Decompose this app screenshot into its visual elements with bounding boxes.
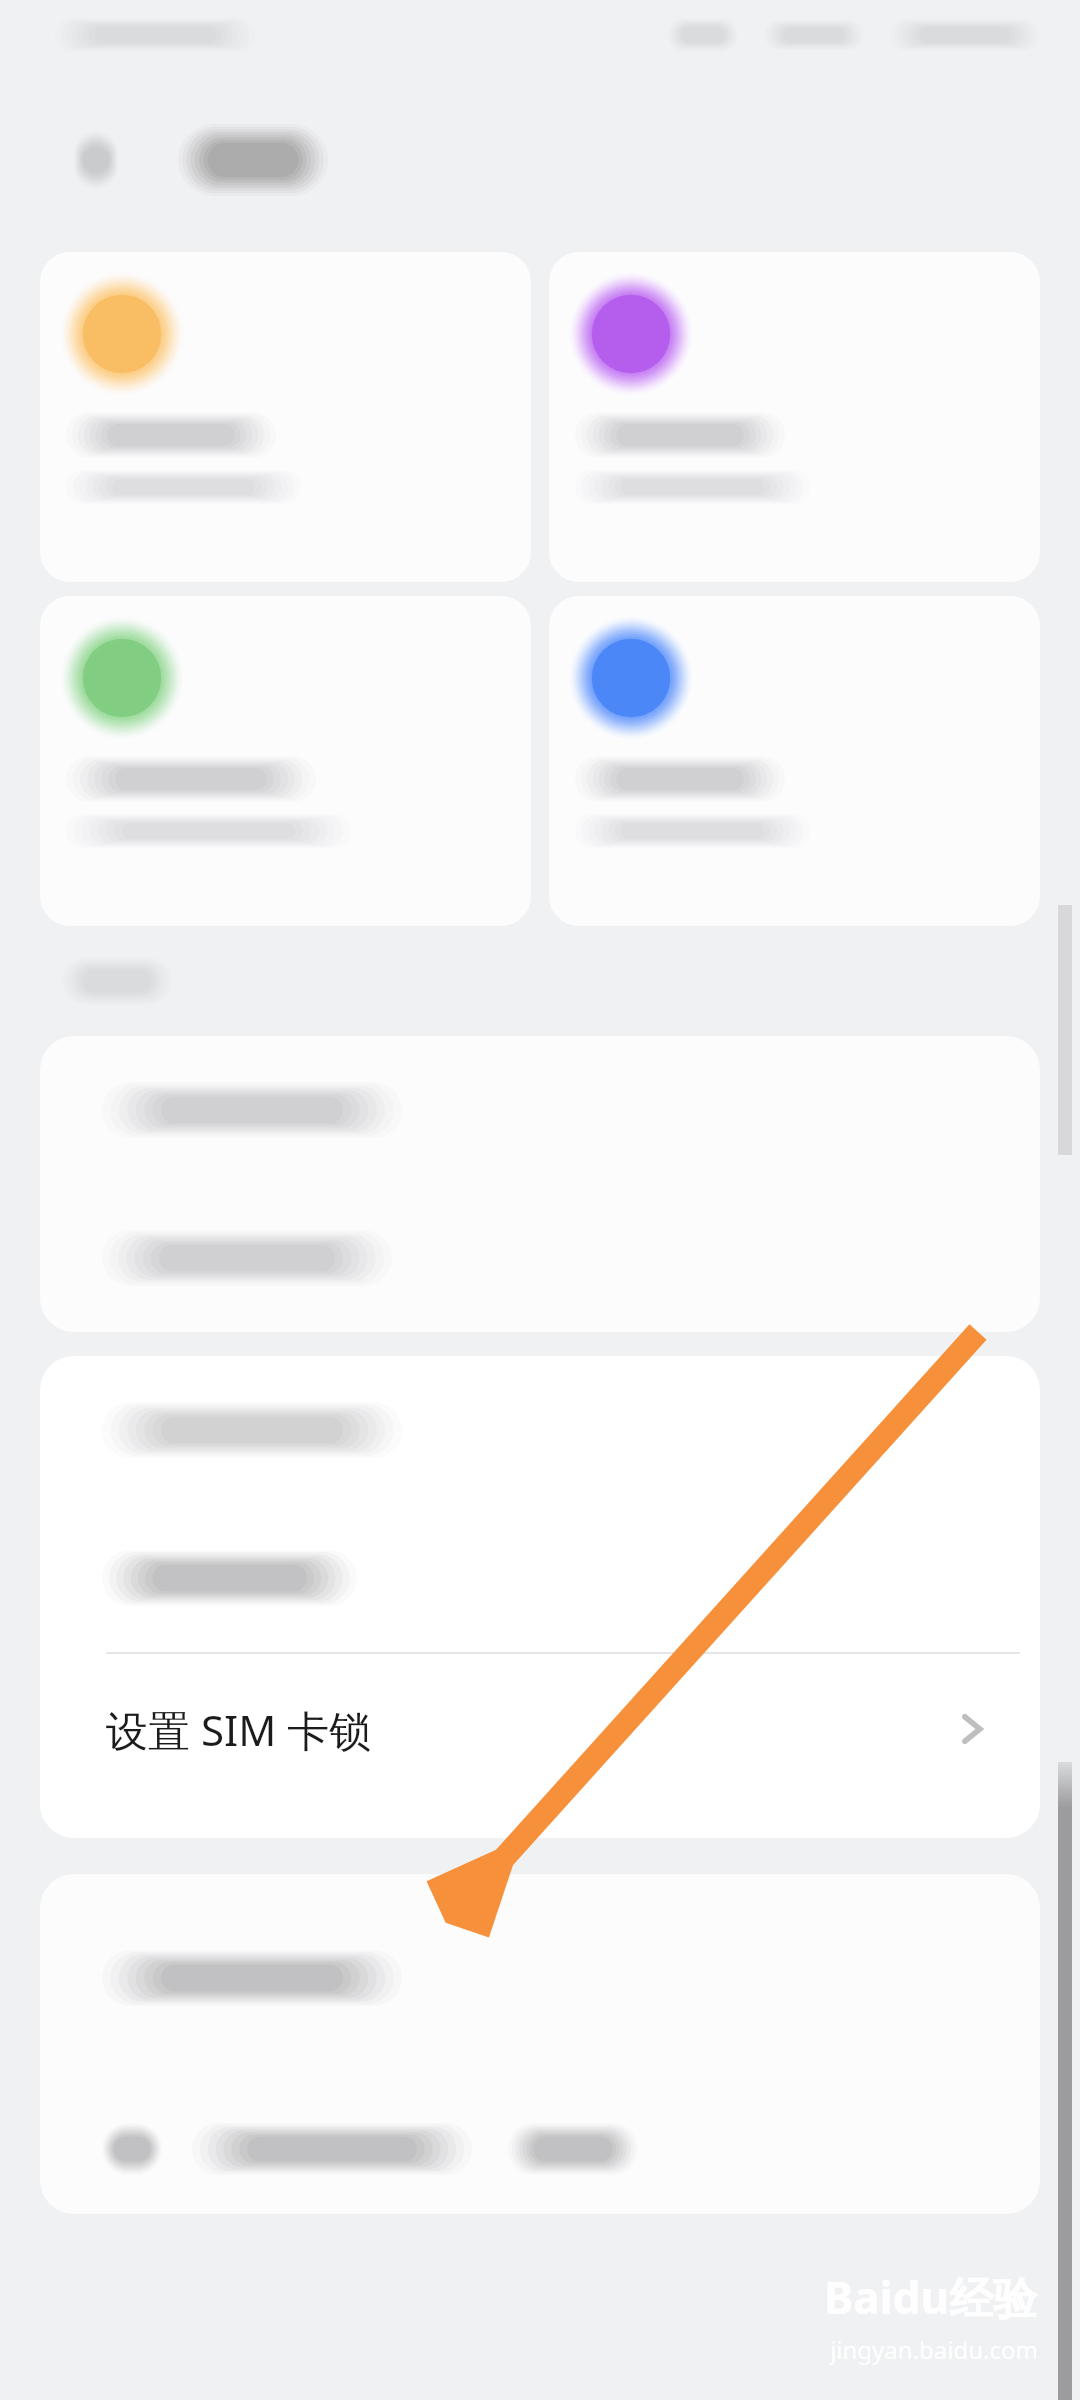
staticText: Baidu经验 — [824, 2267, 1038, 2327]
button[interactable] — [40, 1184, 1040, 1332]
button[interactable]: Back — [58, 122, 134, 198]
staticText: 设置 SIM 卡锁 — [106, 1701, 372, 1758]
button[interactable] — [40, 596, 531, 926]
button[interactable] — [40, 252, 531, 582]
button[interactable] — [40, 1504, 1040, 1652]
button[interactable] — [40, 1356, 1040, 1504]
staticText: jingyan.baidu.com — [830, 2333, 1038, 2366]
button[interactable]: 设置 SIM 卡锁 — [40, 1654, 1040, 1804]
button[interactable] — [549, 252, 1040, 582]
button[interactable] — [40, 1036, 1040, 1184]
button[interactable] — [549, 596, 1040, 926]
